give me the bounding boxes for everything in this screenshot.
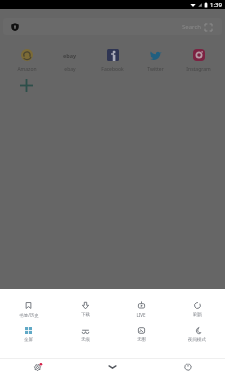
button[interactable]: 无痕 xyxy=(57,327,113,343)
button[interactable]: LIVE xyxy=(113,302,169,318)
button[interactable]: 下载 xyxy=(57,302,113,318)
button[interactable]: 全屏 xyxy=(0,327,57,343)
staticText: 无图 xyxy=(137,337,146,343)
staticText: 1:39 xyxy=(210,1,222,9)
button[interactable]: Add shortcut xyxy=(5,73,48,97)
staticText: Facebook xyxy=(101,66,124,73)
staticText: Amazon xyxy=(17,66,37,73)
button[interactable]: Exit xyxy=(150,359,225,375)
staticText: Search xyxy=(182,23,201,31)
button[interactable]: Amazon xyxy=(5,49,48,73)
button[interactable]: 刷新 xyxy=(169,302,225,318)
button[interactable]: Settings xyxy=(0,359,75,375)
button[interactable]: Instagram xyxy=(177,49,220,73)
staticText: ebay xyxy=(63,52,77,59)
button[interactable]: Twitter xyxy=(134,49,177,73)
button[interactable]: ebay xyxy=(48,49,91,73)
staticText: Instagram xyxy=(186,66,211,73)
staticText: Twitter xyxy=(147,66,164,73)
staticText: 书签/历史 xyxy=(19,312,39,318)
staticText: ebay xyxy=(64,66,76,73)
button[interactable]: Security shield xyxy=(3,18,222,35)
button[interactable]: 书签/历史 xyxy=(0,302,57,318)
button[interactable]: 夜间模式 xyxy=(169,327,225,343)
staticText: 全屏 xyxy=(24,337,33,343)
other: Security shield xyxy=(11,23,19,31)
button[interactable]: 无图 xyxy=(113,327,169,343)
other: Scan QR code xyxy=(205,24,212,31)
button[interactable]: Facebook xyxy=(91,49,134,73)
button[interactable]: Collapse panel xyxy=(75,359,150,375)
staticText: 下载 xyxy=(81,312,90,318)
staticText: LIVE xyxy=(136,312,146,318)
staticText: 无痕 xyxy=(81,337,90,343)
staticText: 夜间模式 xyxy=(188,337,206,343)
staticText: 刷新 xyxy=(193,312,202,318)
